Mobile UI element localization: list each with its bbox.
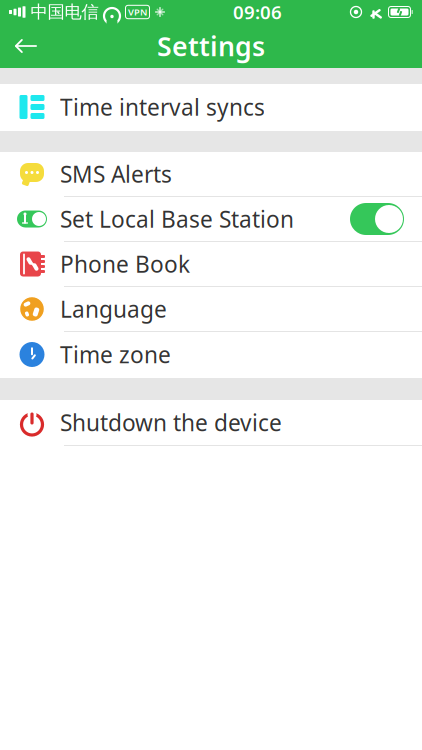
button[interactable]: Shutdown the device <box>0 400 422 446</box>
staticText: 中国电信 <box>30 1 98 23</box>
staticText: Phone Book <box>60 249 190 279</box>
button[interactable]: Set Local Base Station <box>0 197 422 242</box>
button[interactable]: Time zone <box>0 332 422 378</box>
staticText: Language <box>60 294 167 324</box>
button[interactable]: Phone Book <box>0 242 422 287</box>
staticText: Time interval syncs <box>60 92 265 122</box>
button[interactable]: SMS Alerts <box>0 152 422 197</box>
button[interactable]: Back <box>0 24 52 68</box>
staticText: 09:06 <box>233 0 282 24</box>
staticText: Time zone <box>60 339 171 369</box>
button[interactable]: Language <box>0 287 422 332</box>
staticText: VPN <box>128 6 147 18</box>
staticText: SMS Alerts <box>60 159 172 189</box>
staticText: Settings <box>157 28 265 64</box>
staticText: Shutdown the device <box>60 407 282 437</box>
button[interactable]: Time interval syncs <box>0 84 422 131</box>
staticText: Set Local Base Station <box>60 204 294 234</box>
